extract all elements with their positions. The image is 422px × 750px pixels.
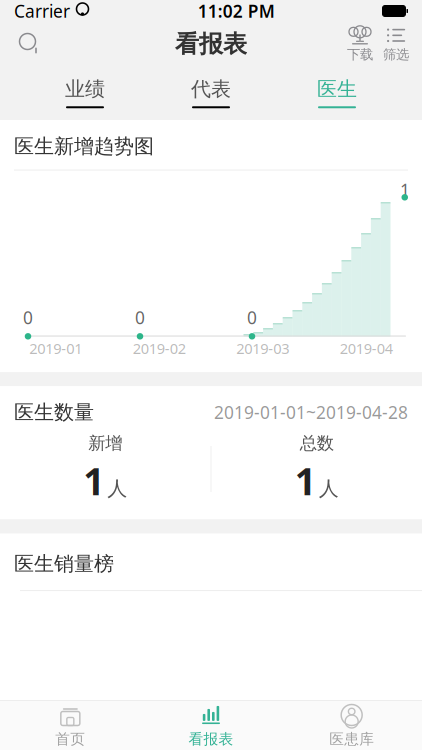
staticText: 2019-03 bbox=[236, 339, 289, 358]
staticText: 2019-01 bbox=[29, 339, 82, 358]
button[interactable]: 医患库 bbox=[281, 701, 422, 750]
staticText: 代表 bbox=[191, 77, 231, 101]
staticText: 业绩 bbox=[65, 77, 105, 101]
staticText: 看报表 bbox=[175, 29, 247, 59]
staticText: 总数 bbox=[300, 433, 334, 454]
staticText: 1 bbox=[400, 179, 410, 202]
staticText: 1 bbox=[83, 456, 104, 505]
staticText: 2019-01-01~2019-04-28 bbox=[214, 401, 408, 424]
button[interactable]: 看报表 bbox=[141, 701, 281, 750]
staticText: 医生新增趋势图 bbox=[14, 134, 154, 159]
button[interactable]: 下载 bbox=[342, 24, 378, 64]
staticText: 0 bbox=[135, 306, 145, 329]
button[interactable]: 医生 bbox=[274, 66, 400, 110]
button[interactable]: 筛选 bbox=[378, 24, 414, 64]
button[interactable]: 代表 bbox=[148, 66, 274, 110]
staticText: 医生销量榜 bbox=[14, 551, 114, 576]
staticText: 人 bbox=[319, 476, 339, 501]
staticText: 筛选 bbox=[383, 46, 409, 63]
staticText: 0 bbox=[23, 306, 33, 329]
button[interactable]: 搜索 bbox=[8, 22, 52, 66]
staticText: 0 bbox=[247, 306, 257, 329]
button[interactable]: 业绩 bbox=[22, 66, 148, 110]
staticText: 下载 bbox=[347, 46, 373, 63]
button[interactable]: 首页 bbox=[0, 701, 141, 750]
staticText: 看报表 bbox=[188, 730, 233, 748]
staticText: 2019-04 bbox=[340, 339, 393, 358]
staticText: 医生数量 bbox=[14, 400, 94, 425]
staticText: 11:02 PM bbox=[198, 0, 275, 22]
staticText: 2019-02 bbox=[133, 339, 186, 358]
staticText: 1 bbox=[295, 456, 316, 505]
staticText: 医患库 bbox=[329, 730, 374, 748]
staticText: 医生 bbox=[317, 77, 357, 101]
staticText: Carrier bbox=[14, 0, 70, 22]
staticText: 人 bbox=[107, 476, 127, 501]
staticText: 首页 bbox=[55, 730, 85, 748]
staticText: 新增 bbox=[88, 433, 122, 454]
